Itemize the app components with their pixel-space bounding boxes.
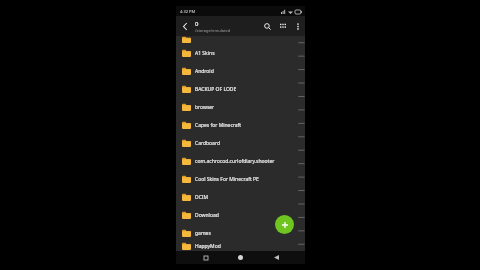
staticText: A1 Skins	[195, 50, 294, 57]
staticText: games	[195, 230, 294, 237]
staticText: Cool Skins For Minecraft PE	[195, 176, 294, 183]
button[interactable]: DCIM	[176, 188, 305, 206]
staticText: com.achrocod.curlofdiary.shooter	[195, 158, 294, 165]
staticText: /storage/emulated	[195, 28, 231, 33]
button[interactable]: Cardboard	[176, 134, 305, 152]
staticText: 0	[195, 20, 199, 28]
button[interactable]: Back	[270, 251, 283, 264]
staticText: DCIM	[195, 194, 294, 201]
button[interactable]: Capes for Minecraft	[176, 116, 305, 134]
button[interactable]: Back	[176, 17, 194, 35]
button[interactable]: Download	[176, 206, 305, 224]
button[interactable]: games	[176, 224, 305, 242]
staticText: browser	[195, 104, 294, 111]
staticText: HappyMod	[195, 243, 294, 250]
button[interactable]	[176, 36, 305, 44]
button[interactable]: More options	[291, 19, 305, 33]
button[interactable]: BACKUP OF LODE	[176, 80, 305, 98]
button[interactable]: Add	[275, 215, 294, 234]
button[interactable]: Grid view	[275, 18, 291, 34]
staticText: Capes for Minecraft	[195, 122, 294, 129]
button[interactable]: Search	[259, 18, 275, 34]
button[interactable]: HappyMod	[176, 242, 305, 251]
button[interactable]: Android	[176, 62, 305, 80]
staticText: Cardboard	[195, 140, 294, 147]
staticText: Download	[195, 212, 294, 219]
button[interactable]: Home	[234, 251, 247, 264]
button[interactable]: Recents	[199, 251, 212, 264]
button[interactable]: com.achrocod.curlofdiary.shooter	[176, 152, 305, 170]
staticText: BACKUP OF LODE	[195, 86, 294, 93]
button[interactable]: browser	[176, 98, 305, 116]
button[interactable]: Cool Skins For Minecraft PE	[176, 170, 305, 188]
staticText: Android	[195, 68, 294, 75]
staticText: 4:32 PM	[180, 9, 196, 14]
button[interactable]: A1 Skins	[176, 44, 305, 62]
